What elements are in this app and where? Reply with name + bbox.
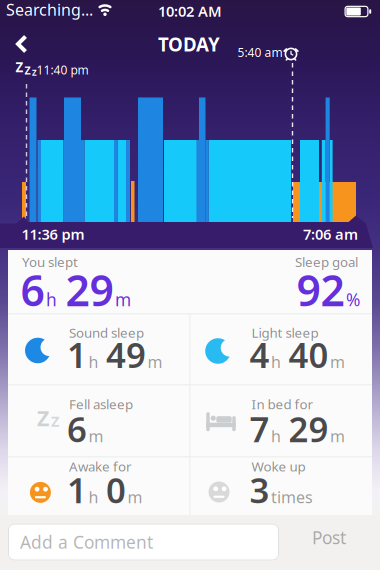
staticText: 92: [296, 261, 344, 318]
staticText: Sleep goal: [295, 253, 358, 271]
staticText: 11:36 pm: [21, 224, 84, 244]
staticText: h: [271, 425, 281, 447]
staticText: 3: [249, 467, 269, 513]
staticText: %: [346, 288, 360, 311]
staticText: Z: [51, 411, 59, 431]
staticText: Z: [32, 67, 37, 78]
staticText: Searching...: [6, 0, 93, 20]
staticText: m: [330, 425, 345, 447]
staticText: m: [115, 288, 131, 311]
staticText: h: [88, 351, 98, 372]
staticText: 6: [20, 261, 44, 318]
staticText: m: [147, 351, 162, 372]
staticText: Z: [37, 404, 49, 432]
staticText: h: [46, 288, 57, 311]
staticText: Z: [15, 58, 23, 76]
staticText: 11:40 pm: [36, 62, 88, 78]
staticText: 40: [288, 331, 328, 377]
staticText: times: [271, 486, 313, 507]
staticText: 29: [65, 261, 113, 318]
staticText: 4: [249, 331, 269, 377]
staticText: 6: [67, 406, 87, 452]
staticText: Woke up: [251, 457, 305, 475]
staticText: m: [88, 425, 103, 447]
staticText: 0: [106, 467, 126, 513]
button[interactable]: Post: [312, 526, 346, 549]
staticText: 10:02 AM: [158, 1, 222, 21]
staticText: 1: [67, 467, 87, 513]
staticText: Fell asleep: [69, 395, 133, 413]
staticText: m: [127, 486, 142, 507]
staticText: 5:40 am: [237, 44, 282, 60]
staticText: Post: [312, 526, 346, 549]
staticText: You slept: [22, 253, 78, 271]
button[interactable]: [14, 34, 30, 54]
staticText: Z: [24, 63, 30, 78]
staticText: TODAY: [158, 32, 220, 57]
staticText: h: [271, 351, 281, 372]
staticText: In bed for: [251, 395, 313, 413]
staticText: 49: [106, 331, 146, 377]
staticText: 29: [288, 406, 328, 452]
staticText: Awake for: [69, 457, 132, 475]
staticText: 7: [249, 406, 269, 452]
staticText: 7:06 am: [303, 224, 358, 244]
staticText: Sound sleep: [69, 324, 144, 341]
staticText: h: [88, 486, 98, 507]
staticText: 1: [67, 331, 87, 377]
staticText: Light sleep: [251, 324, 318, 341]
staticText: Add a Comment: [20, 530, 153, 553]
button[interactable]: Add a Comment: [8, 523, 279, 560]
staticText: m: [330, 351, 345, 372]
